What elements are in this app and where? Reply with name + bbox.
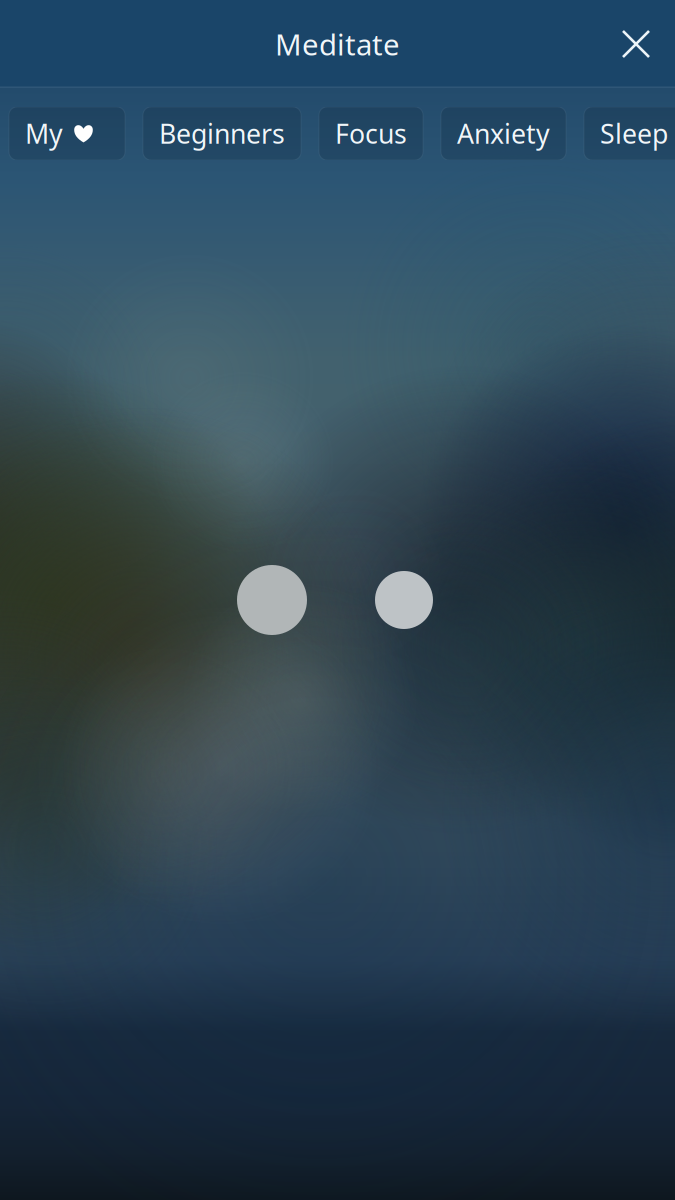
button[interactable]: Focus	[319, 107, 423, 160]
staticText: Sleep	[600, 116, 668, 151]
staticText: Meditate	[275, 24, 400, 63]
staticText: Beginners	[159, 116, 285, 151]
button[interactable]: Close	[604, 12, 668, 76]
staticText: My	[25, 116, 63, 151]
button[interactable]: Beginners	[143, 107, 301, 160]
button[interactable]: Anxiety	[441, 107, 566, 160]
button[interactable]: Sleep	[584, 107, 675, 160]
staticText: Focus	[335, 116, 407, 151]
staticText: Anxiety	[457, 116, 550, 151]
button[interactable]: My	[9, 107, 125, 160]
